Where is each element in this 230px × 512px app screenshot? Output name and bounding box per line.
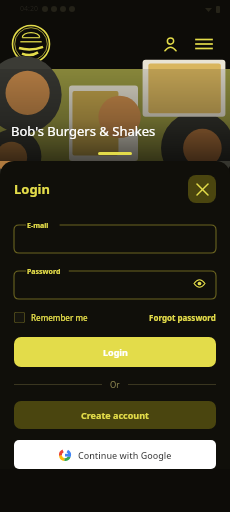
- staticText: Forgot password: [149, 312, 216, 323]
- staticText: E-mail: [27, 221, 49, 231]
- button[interactable]: Menu: [190, 30, 218, 58]
- staticText: Login: [103, 346, 128, 358]
- button[interactable]: Account: [156, 30, 184, 58]
- button[interactable]: Show password: [190, 274, 208, 292]
- button[interactable]: Create account: [14, 401, 216, 429]
- button[interactable]: Close: [188, 175, 216, 203]
- staticText: Or: [110, 379, 120, 390]
- staticText: Create account: [81, 409, 149, 421]
- staticText: Continue with Google: [78, 449, 172, 461]
- button[interactable]: Login: [14, 337, 216, 367]
- staticText: Login: [14, 180, 50, 198]
- button[interactable]: Forgot password: [149, 312, 216, 323]
- staticText: Password: [27, 267, 61, 277]
- button[interactable]: Password: [14, 266, 216, 299]
- staticText: Remember me: [31, 312, 88, 323]
- button[interactable]: Remember me: [14, 312, 88, 323]
- staticText: Bob's Burgers & Shakes: [11, 122, 156, 140]
- staticText: 04:20: [20, 4, 38, 14]
- button[interactable]: Continue with Google: [14, 440, 216, 469]
- button[interactable]: E-mail: [14, 220, 216, 253]
- button[interactable]: Bob's Burgers & Shakes logo: [11, 24, 51, 64]
